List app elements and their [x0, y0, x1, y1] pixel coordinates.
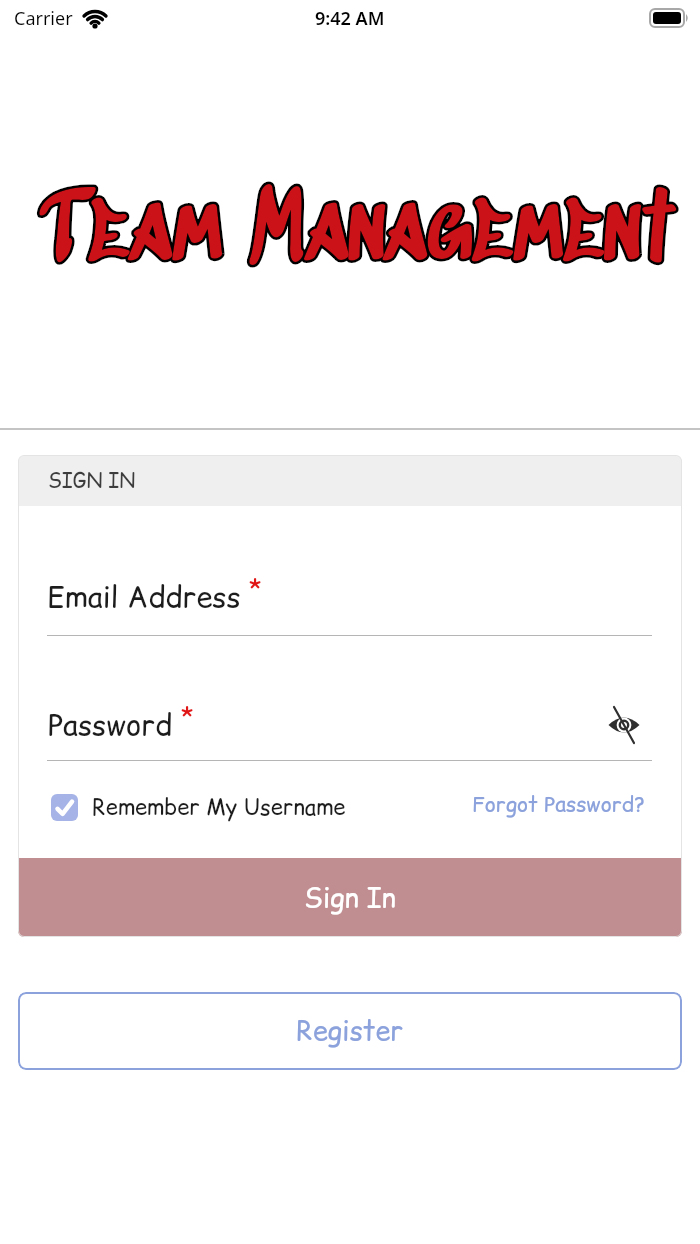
- button[interactable]: Register: [18, 992, 682, 1070]
- button[interactable]: [604, 705, 644, 745]
- staticText: *: [173, 700, 195, 736]
- staticText: Sign In: [304, 879, 396, 917]
- button[interactable]: Sign In: [18, 858, 682, 937]
- staticText: SIGN IN: [48, 467, 136, 495]
- button[interactable]: [47, 562, 652, 638]
- staticText: 9:42 AM: [315, 6, 385, 31]
- button[interactable]: Remember My Username: [51, 792, 346, 823]
- staticText: Carrier: [14, 6, 73, 31]
- staticText: Password: [48, 704, 173, 744]
- staticText: Team Management: [43, 176, 671, 292]
- staticText: Forgot Password?: [472, 790, 646, 819]
- button[interactable]: Forgot Password?: [472, 790, 646, 819]
- button[interactable]: [47, 692, 652, 763]
- staticText: Register: [296, 1012, 404, 1050]
- staticText: Remember My Username: [92, 792, 346, 823]
- staticText: Email Address: [47, 576, 241, 616]
- staticText: Team Management: [43, 176, 671, 292]
- staticText: *: [241, 572, 263, 608]
